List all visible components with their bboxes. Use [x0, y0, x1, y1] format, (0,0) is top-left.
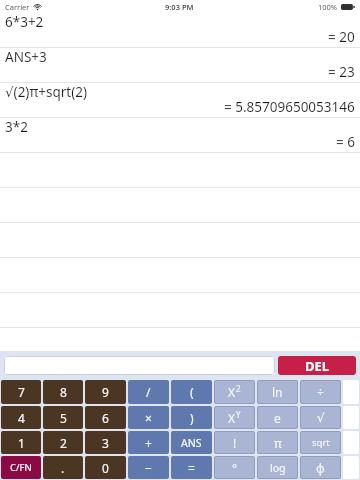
- button[interactable]: 2: [43, 431, 83, 454]
- staticText: = 23: [328, 63, 355, 81]
- staticText: 2: [236, 383, 241, 394]
- button[interactable]: 5: [43, 406, 83, 429]
- other: Wi-Fi signal: [33, 3, 42, 10]
- staticText: 7: [18, 384, 25, 400]
- staticText: e: [274, 410, 281, 426]
- button[interactable]: ln: [257, 380, 298, 404]
- staticText: C/FN: [10, 461, 32, 474]
- button[interactable]: 8: [43, 380, 83, 404]
- button[interactable]: ANS+3: [0, 48, 360, 83]
- staticText: +: [145, 435, 152, 451]
- staticText: 3*2: [5, 118, 28, 136]
- staticText: 9: [102, 384, 109, 400]
- staticText: −: [145, 460, 152, 476]
- staticText: 9:03 PM: [165, 2, 194, 12]
- button[interactable]: [0, 223, 360, 258]
- button[interactable]: [0, 328, 360, 352]
- staticText: 8: [60, 384, 67, 400]
- button[interactable]: =: [171, 456, 212, 479]
- staticText: 100%: [318, 2, 338, 12]
- staticText: log: [270, 461, 286, 475]
- staticText: Carrier: [5, 2, 30, 12]
- staticText: = 6: [336, 133, 355, 151]
- button[interactable]: 0: [85, 456, 126, 479]
- button[interactable]: √: [300, 406, 341, 429]
- button[interactable]: °: [214, 456, 255, 479]
- staticText: = 20: [328, 28, 355, 46]
- button[interactable]: /: [128, 380, 169, 404]
- button[interactable]: 6*3+2: [0, 13, 360, 48]
- button[interactable]: e: [257, 406, 298, 429]
- button[interactable]: 6: [85, 406, 126, 429]
- staticText: DEL: [305, 357, 330, 375]
- staticText: ): [190, 410, 194, 426]
- staticText: ÷: [317, 384, 324, 400]
- staticText: (: [190, 384, 194, 400]
- button[interactable]: [0, 258, 360, 293]
- button[interactable]: C/FN: [1, 456, 41, 479]
- button[interactable]: √(2)π+sqrt(2): [0, 83, 360, 118]
- staticText: ln: [272, 384, 283, 400]
- button[interactable]: 7: [1, 380, 41, 404]
- button[interactable]: sqrt: [300, 431, 341, 454]
- button[interactable]: 3*2: [0, 118, 360, 153]
- button[interactable]: ): [171, 406, 212, 429]
- staticText: √(2)π+sqrt(2): [5, 83, 88, 101]
- staticText: 0: [102, 460, 109, 476]
- staticText: 4: [18, 410, 25, 426]
- staticText: 6: [102, 410, 109, 426]
- button[interactable]: Expression input: [4, 356, 275, 375]
- staticText: .: [61, 460, 65, 476]
- staticText: X: [228, 410, 236, 426]
- button[interactable]: ANS: [171, 431, 212, 454]
- button[interactable]: [0, 153, 360, 188]
- button[interactable]: X: [214, 380, 255, 404]
- staticText: /: [146, 384, 151, 400]
- button[interactable]: DEL: [278, 356, 356, 375]
- button[interactable]: [0, 188, 360, 223]
- staticText: =: [188, 460, 195, 476]
- staticText: X: [228, 384, 236, 400]
- staticText: ANS: [181, 436, 202, 450]
- button[interactable]: 3: [85, 431, 126, 454]
- button[interactable]: ÷: [300, 380, 341, 404]
- button[interactable]: π: [257, 431, 298, 454]
- button[interactable]: [0, 293, 360, 328]
- button[interactable]: 9: [85, 380, 126, 404]
- staticText: ×: [145, 410, 152, 426]
- staticText: Y: [236, 409, 241, 420]
- button[interactable]: −: [128, 456, 169, 479]
- button[interactable]: 4: [1, 406, 41, 429]
- staticText: 6*3+2: [5, 13, 44, 31]
- button[interactable]: log: [257, 456, 298, 479]
- button[interactable]: +: [128, 431, 169, 454]
- staticText: ANS+3: [5, 48, 47, 66]
- staticText: = 5.85709650053146: [224, 98, 355, 116]
- button[interactable]: φ: [300, 456, 341, 479]
- staticText: 1: [18, 435, 25, 451]
- button[interactable]: (: [171, 380, 212, 404]
- staticText: π: [274, 435, 282, 451]
- staticText: 5: [60, 410, 67, 426]
- other: Battery full: [341, 4, 355, 10]
- button[interactable]: !: [214, 431, 255, 454]
- staticText: 3: [102, 435, 109, 451]
- button[interactable]: .: [43, 456, 83, 479]
- staticText: φ: [316, 460, 325, 476]
- button[interactable]: X: [214, 406, 255, 429]
- staticText: !: [233, 435, 237, 451]
- staticText: √: [317, 411, 325, 425]
- staticText: °: [232, 460, 238, 476]
- staticText: 2: [60, 435, 67, 451]
- button[interactable]: 1: [1, 431, 41, 454]
- button[interactable]: ×: [128, 406, 169, 429]
- staticText: sqrt: [312, 436, 330, 449]
